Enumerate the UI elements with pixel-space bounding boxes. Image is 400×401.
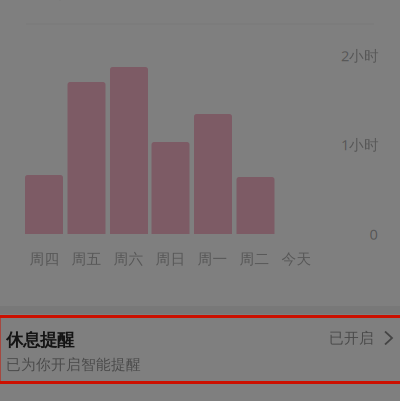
staticText: 周五: [71, 250, 101, 268]
staticText: 周六: [113, 250, 143, 268]
staticText: 已为你开启智能提醒: [6, 356, 141, 374]
staticText: 周二: [239, 250, 269, 268]
staticText: 周日: [155, 250, 185, 268]
button[interactable]: 休息提醒: [0, 317, 400, 381]
staticText: 1小时: [341, 135, 379, 154]
staticText: 今天: [281, 250, 311, 268]
staticText: 已开启: [329, 329, 374, 347]
staticText: 周一: [197, 250, 227, 268]
staticText: 2小时: [341, 46, 379, 65]
staticText: 休息提醒: [6, 329, 74, 351]
staticText: 0: [369, 224, 377, 244]
staticText: 周四: [29, 250, 59, 268]
